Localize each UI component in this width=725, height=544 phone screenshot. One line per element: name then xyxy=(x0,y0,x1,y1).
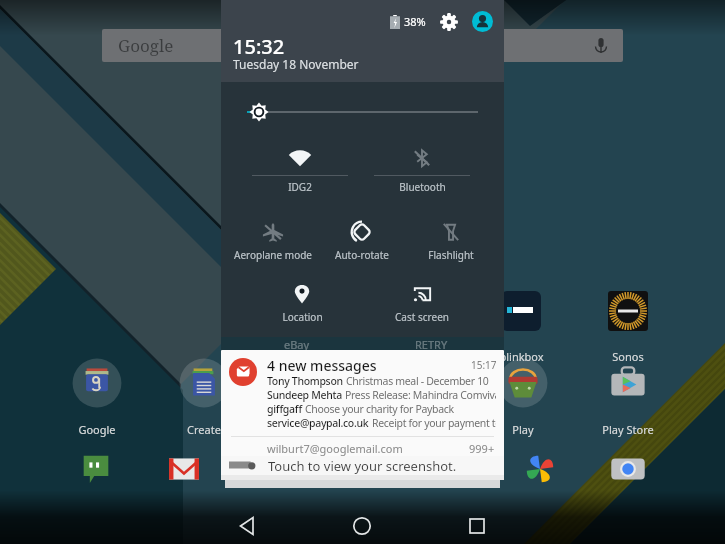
staticText: Press Release: Mahindra Comviva … xyxy=(345,388,496,402)
staticText: Christmas meal - December 10 xyxy=(346,374,489,388)
button[interactable]: IDG2 xyxy=(252,136,348,196)
button[interactable]: Screenshot xyxy=(221,455,504,475)
button[interactable]: Sonos xyxy=(592,286,664,364)
button[interactable]: App xyxy=(60,447,132,491)
staticText: wilburt7@googlemail.com xyxy=(267,441,403,456)
button[interactable]: Play Store xyxy=(592,357,664,437)
other: Gmail xyxy=(229,358,257,386)
staticText: Play Store xyxy=(602,422,654,437)
staticText: Aeroplane mode xyxy=(234,248,312,262)
button[interactable]: Aeroplane mode xyxy=(225,210,321,270)
other: Screenshot xyxy=(229,458,259,472)
staticText: Sundeep Mehta xyxy=(267,388,342,402)
button[interactable]: Google xyxy=(61,357,133,437)
staticText: Choose your charity for Payback xyxy=(305,402,454,416)
button[interactable]: Create xyxy=(168,357,240,437)
button[interactable]: Auto-rotate xyxy=(314,210,410,270)
button[interactable]: Home xyxy=(340,504,384,544)
staticText: 4 new messages xyxy=(267,356,377,375)
staticText: 999+ xyxy=(469,441,495,456)
button[interactable]: Bluetooth xyxy=(374,136,470,196)
staticText: RETRY xyxy=(415,337,448,351)
staticText: Create xyxy=(187,422,221,437)
staticText: service@paypal.co.uk xyxy=(267,416,369,430)
button[interactable]: App xyxy=(504,447,576,491)
button[interactable]: Location xyxy=(254,272,350,332)
staticText: giffgaff xyxy=(267,402,302,416)
button[interactable]: Back xyxy=(226,504,270,544)
staticText: Flashlight xyxy=(428,248,474,262)
staticText: Sonos xyxy=(612,349,644,364)
staticText: Tuesday 18 November xyxy=(233,56,359,72)
button[interactable]: Recents xyxy=(455,504,499,544)
button[interactable]: Play xyxy=(487,357,559,437)
button[interactable]: Google xyxy=(102,29,623,62)
staticText: Play xyxy=(512,422,534,437)
staticText: Google xyxy=(118,34,174,57)
staticText: Touch to view your screenshot. xyxy=(268,457,457,475)
staticText: eBay xyxy=(284,337,310,351)
staticText: 15:32 xyxy=(233,33,285,60)
staticText: IDG2 xyxy=(288,180,312,194)
staticText: 38% xyxy=(404,14,426,29)
button[interactable]: User profile xyxy=(472,11,493,32)
staticText: 15:17 xyxy=(471,358,497,372)
staticText: Auto-rotate xyxy=(335,248,389,262)
button[interactable]: Settings xyxy=(440,13,458,31)
staticText: Bluetooth xyxy=(399,180,446,194)
button[interactable]: Cast screen xyxy=(374,272,470,332)
staticText: Tony Thompson xyxy=(267,374,343,388)
button[interactable]: App xyxy=(148,447,220,491)
button[interactable]: App xyxy=(592,447,664,491)
staticText: blinkbox xyxy=(499,349,544,364)
staticText: Cast screen xyxy=(395,310,449,324)
staticText: Location xyxy=(282,310,323,324)
button[interactable]: Flashlight xyxy=(403,210,499,270)
button[interactable]: blinkbox xyxy=(485,286,557,364)
other: Voice search xyxy=(591,36,611,56)
staticText: Google xyxy=(78,422,116,437)
staticText: Receipt for your payment to j… xyxy=(372,416,496,430)
button[interactable]: Gmail xyxy=(221,350,504,456)
